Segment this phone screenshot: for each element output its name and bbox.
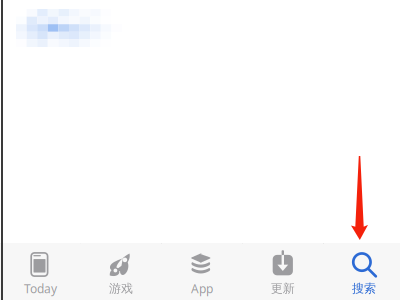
staticText: 更新 [271, 281, 295, 296]
staticText: 游戏 [109, 281, 133, 296]
button[interactable]: 游戏 [81, 243, 161, 300]
button[interactable]: 更新 [243, 243, 323, 300]
staticText: Today [24, 280, 57, 296]
button[interactable]: Today [0, 243, 81, 300]
button[interactable]: App [162, 243, 242, 300]
staticText: App [191, 280, 213, 296]
staticText: 搜索 [352, 281, 376, 296]
button[interactable]: 搜索 [324, 243, 400, 300]
